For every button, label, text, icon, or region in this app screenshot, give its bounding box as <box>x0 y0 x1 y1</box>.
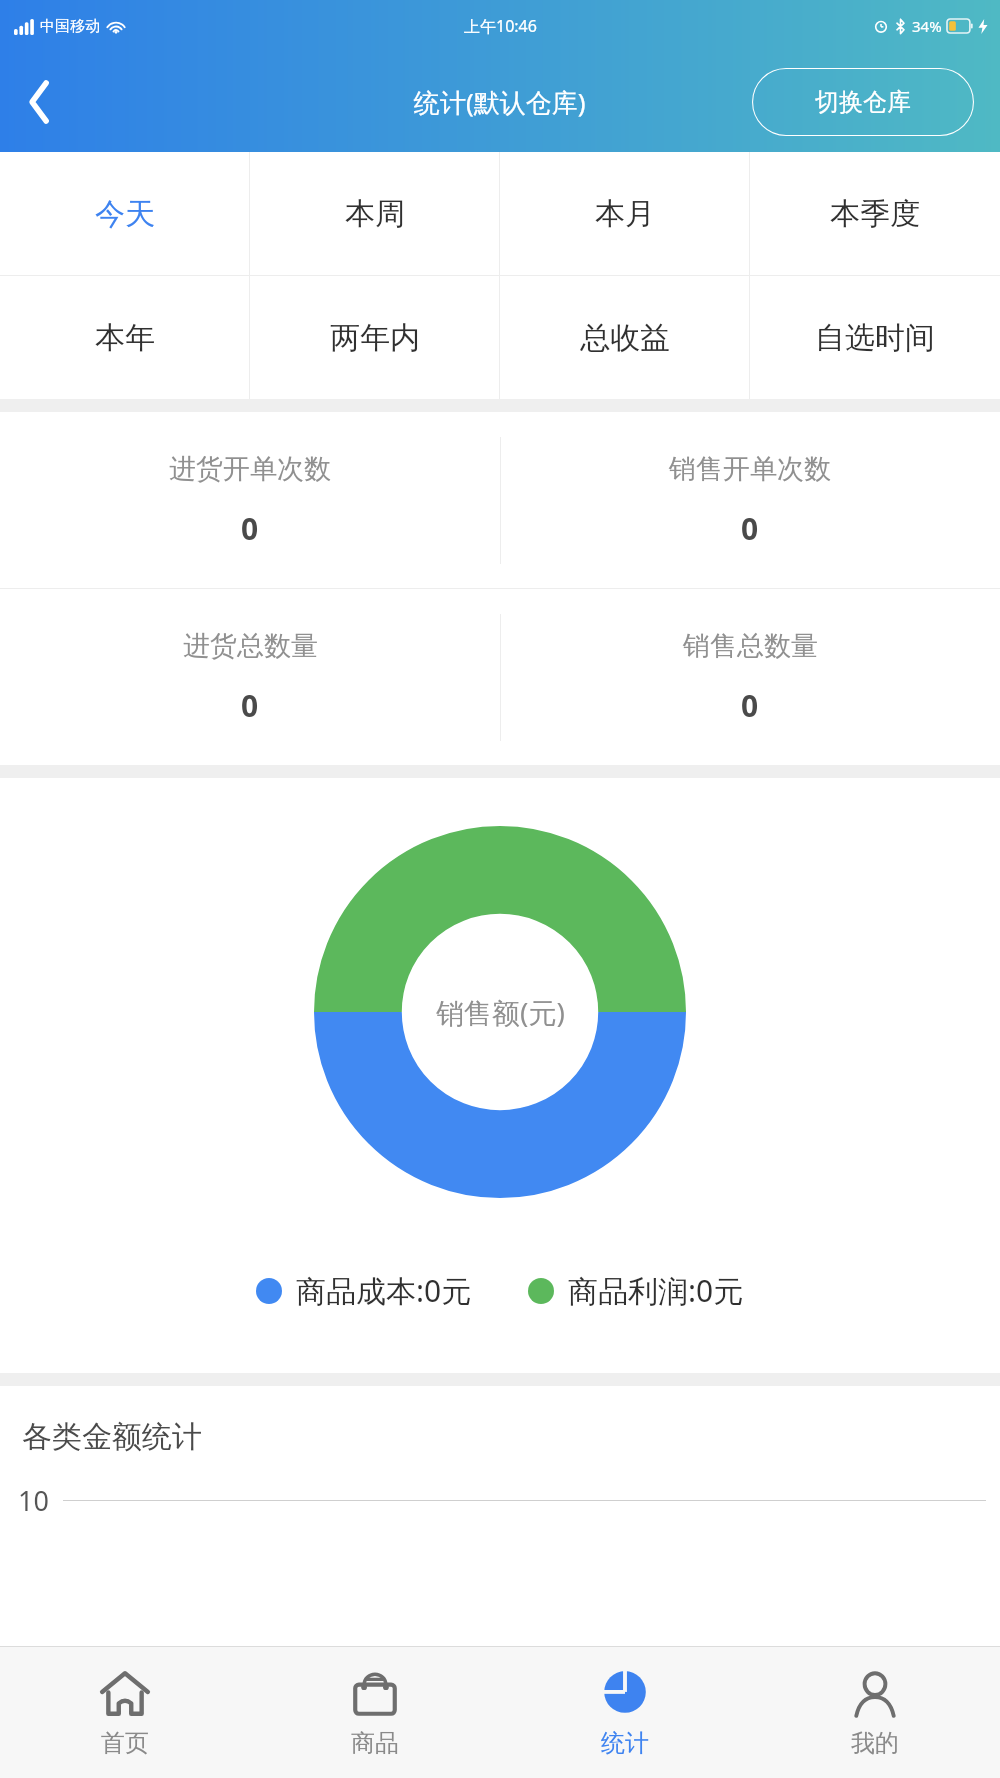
staticText: 我的 <box>851 1728 899 1758</box>
staticText: 自选时间 <box>815 319 935 357</box>
staticText: 0 <box>241 685 259 726</box>
button[interactable]: 本周 <box>250 152 500 275</box>
staticText: 商品利润:0元 <box>568 1270 744 1311</box>
staticText: 上午10:46 <box>464 15 537 37</box>
button[interactable]: Back <box>0 52 80 152</box>
staticText: 本年 <box>95 319 155 357</box>
button[interactable]: 统计 <box>500 1647 750 1778</box>
staticText: 商品成本:0元 <box>296 1270 472 1311</box>
staticText: 本周 <box>345 195 405 233</box>
button[interactable]: 自选时间 <box>750 276 1000 399</box>
button[interactable]: 商品 <box>250 1647 500 1778</box>
button[interactable]: 总收益 <box>500 276 750 399</box>
staticText: 销售开单次数 <box>669 452 831 486</box>
staticText: 销售总数量 <box>683 629 818 663</box>
staticText: 各类金额统计 <box>22 1418 202 1456</box>
staticText: 首页 <box>101 1728 149 1758</box>
staticText: 本季度 <box>830 195 920 233</box>
button[interactable]: 本季度 <box>750 152 1000 275</box>
staticText: 统计 <box>601 1728 649 1758</box>
button[interactable]: 商品成本:0元 <box>256 1270 472 1311</box>
button[interactable]: 今天 <box>0 152 250 275</box>
staticText: 10 <box>18 1482 49 1519</box>
button[interactable]: 商品利润:0元 <box>528 1270 744 1311</box>
button[interactable]: 销售总数量 <box>500 589 1000 765</box>
button[interactable]: 本年 <box>0 276 250 399</box>
staticText: 今天 <box>95 195 155 233</box>
button[interactable]: 本月 <box>500 152 750 275</box>
button[interactable]: 我的 <box>750 1647 1000 1778</box>
staticText: 切换仓库 <box>815 87 911 117</box>
button[interactable]: 首页 <box>0 1647 250 1778</box>
staticText: 统计(默认仓库) <box>414 84 586 120</box>
staticText: 0 <box>741 508 759 549</box>
staticText: 总收益 <box>580 319 670 357</box>
staticText: 商品 <box>351 1728 399 1758</box>
staticText: 销售额(元) <box>436 993 565 1031</box>
staticText: 两年内 <box>330 319 420 357</box>
staticText: 0 <box>241 508 259 549</box>
staticText: 0 <box>741 685 759 726</box>
staticText: 进货开单次数 <box>169 452 331 486</box>
button[interactable]: 进货开单次数 <box>0 412 500 588</box>
staticText: 本月 <box>595 195 655 233</box>
button[interactable]: 销售开单次数 <box>500 412 1000 588</box>
button[interactable]: 进货总数量 <box>0 589 500 765</box>
staticText: 34% <box>912 16 942 36</box>
staticText: 中国移动 <box>40 17 100 36</box>
button[interactable]: 切换仓库 <box>752 68 974 136</box>
staticText: 进货总数量 <box>183 629 318 663</box>
button[interactable]: 两年内 <box>250 276 500 399</box>
